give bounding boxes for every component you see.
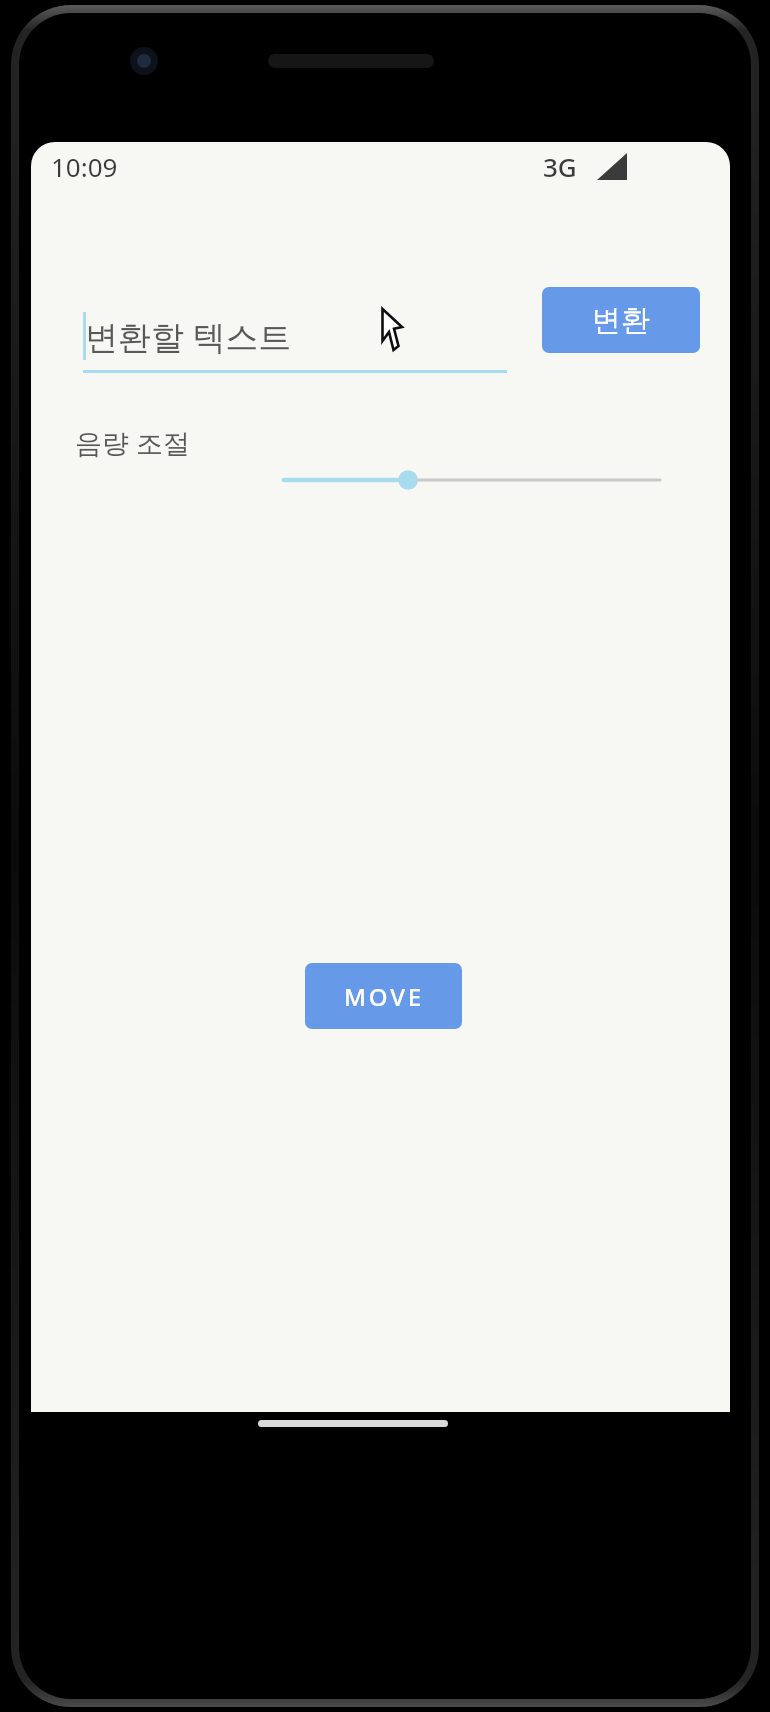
staticText: 변환 bbox=[592, 302, 650, 339]
staticText: 3G bbox=[543, 149, 577, 184]
staticText: MOVE bbox=[344, 980, 424, 1013]
button[interactable]: 변환 bbox=[542, 287, 700, 353]
button[interactable]: Volume slider bbox=[277, 454, 667, 506]
staticText: 변환할 텍스트 bbox=[85, 314, 292, 359]
staticText: 음량 조절 bbox=[75, 424, 191, 461]
button[interactable]: MOVE bbox=[305, 963, 462, 1029]
staticText: 10:09 bbox=[51, 149, 118, 184]
